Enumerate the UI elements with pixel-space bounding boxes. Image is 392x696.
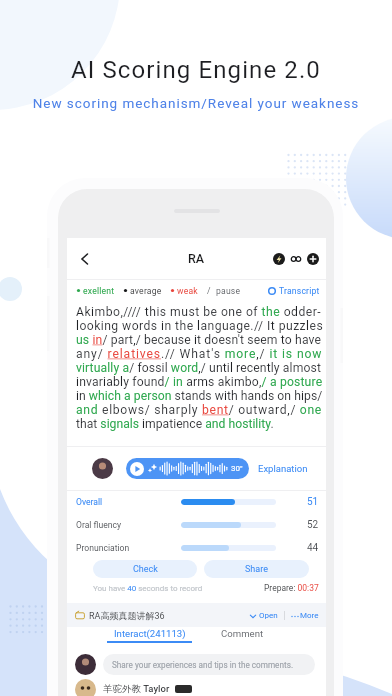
staticText: average bbox=[130, 286, 162, 296]
staticText: 52 bbox=[307, 519, 319, 531]
staticText: Prepare: 00:37 bbox=[264, 583, 319, 593]
button[interactable]: Boost bbox=[273, 253, 285, 265]
staticText: Akimbo,//// this must be one of the odde… bbox=[76, 305, 322, 319]
staticText: 51 bbox=[307, 496, 319, 508]
button[interactable]: Transcript bbox=[268, 286, 320, 296]
staticText: Open bbox=[259, 611, 278, 620]
staticText: virtually a/ fossil word,/ until recentl… bbox=[76, 361, 321, 375]
button[interactable]: Back bbox=[73, 247, 97, 271]
staticText: You have 40 seconds to record bbox=[93, 584, 203, 593]
button[interactable]: Share your experiences and tips in the c… bbox=[103, 654, 315, 675]
staticText: Share your experiences and tips in the c… bbox=[112, 660, 294, 670]
staticText: AI Scoring Engine 2.0 bbox=[0, 56, 392, 84]
staticText: pause bbox=[216, 286, 241, 296]
staticText: Share bbox=[245, 564, 268, 575]
staticText: RA bbox=[188, 251, 205, 266]
staticText: New scoring mechanism/Reveal your weakne… bbox=[0, 95, 392, 111]
staticText: / bbox=[207, 286, 211, 296]
staticText: RA高频真题讲解36 bbox=[89, 610, 165, 621]
button[interactable]: Explanation bbox=[258, 463, 308, 474]
staticText: any/ relatives.// What's more,/ it is no… bbox=[76, 347, 323, 361]
staticText: Oral fluency bbox=[76, 520, 122, 530]
button[interactable]: Open bbox=[249, 611, 278, 620]
staticText: in which a person stands with hands on h… bbox=[76, 389, 323, 403]
staticText: More bbox=[300, 611, 319, 620]
staticText: us in/ part,/ because it doesn't seem to… bbox=[76, 333, 322, 347]
button[interactable]: More bbox=[291, 611, 319, 620]
staticText: 44 bbox=[307, 542, 319, 554]
staticText: Pronunciation bbox=[76, 543, 130, 553]
button[interactable]: Add bbox=[307, 253, 319, 265]
staticText: 30" bbox=[231, 464, 243, 473]
staticText: Transcript bbox=[279, 286, 320, 296]
button[interactable]: Check bbox=[93, 560, 197, 578]
staticText: weak bbox=[177, 286, 198, 296]
button[interactable]: Share bbox=[204, 560, 309, 578]
button[interactable]: 30" bbox=[126, 458, 249, 479]
staticText: and elbows/ sharply bent/ outward,/ one bbox=[76, 403, 323, 417]
staticText: 羊驼外教 Taylor bbox=[103, 683, 170, 695]
staticText: looking words in the language.// It puzz… bbox=[76, 319, 324, 333]
staticText: exellent bbox=[83, 286, 115, 296]
staticText: that signals impatience and hostility. bbox=[76, 417, 274, 431]
staticText: Check bbox=[133, 564, 158, 575]
staticText: Interact(241113) bbox=[114, 628, 186, 639]
staticText: invariably found/ in arms akimbo,/ a pos… bbox=[76, 375, 323, 389]
button[interactable]: Interact(241113) bbox=[107, 628, 192, 643]
button[interactable]: Loop bbox=[290, 253, 302, 265]
staticText: Overall bbox=[76, 497, 103, 507]
button[interactable]: Comment bbox=[221, 628, 264, 639]
